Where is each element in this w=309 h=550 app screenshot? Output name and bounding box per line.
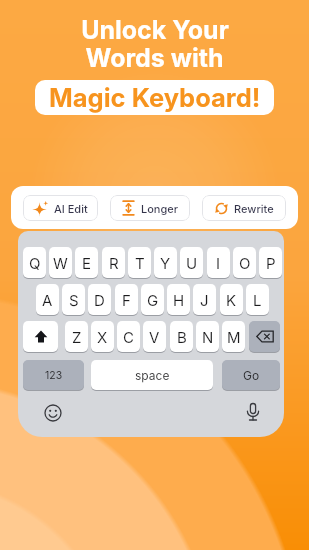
button[interactable]: T <box>128 247 151 278</box>
button[interactable]: Go <box>222 360 280 390</box>
staticText: E <box>82 254 92 272</box>
staticText: F <box>122 291 131 309</box>
staticText: AI Edit <box>54 202 88 215</box>
staticText: 123 <box>45 369 63 382</box>
button[interactable]: U <box>180 247 203 278</box>
staticText: Z <box>72 328 82 346</box>
staticText: U <box>186 254 198 272</box>
button[interactable]: V <box>143 321 166 352</box>
staticText: Q <box>29 254 41 272</box>
button[interactable] <box>23 321 58 352</box>
button[interactable]: I <box>207 247 230 278</box>
button[interactable]: R <box>102 247 125 278</box>
button[interactable] <box>42 402 64 424</box>
staticText: space <box>135 368 170 383</box>
button[interactable]: S <box>62 284 85 315</box>
button[interactable]: 123 <box>23 360 84 390</box>
staticText: A <box>42 291 53 309</box>
button[interactable]: D <box>88 284 111 315</box>
staticText: Go <box>243 368 260 383</box>
button[interactable] <box>242 401 264 423</box>
button[interactable]: E <box>75 247 98 278</box>
staticText: Unlock Your <box>81 15 229 45</box>
button[interactable]: C <box>117 321 140 352</box>
button[interactable]: G <box>141 284 164 315</box>
staticText: S <box>69 291 79 309</box>
button[interactable]: AI Edit <box>23 195 98 221</box>
staticText: M <box>227 328 241 346</box>
staticText: Rewrite <box>234 202 274 215</box>
button[interactable]: Longer <box>110 195 190 221</box>
staticText: O <box>239 254 251 272</box>
staticText: Y <box>160 254 171 272</box>
button[interactable] <box>249 321 280 352</box>
staticText: D <box>94 291 105 309</box>
button[interactable]: space <box>91 360 213 390</box>
button[interactable]: Z <box>65 321 88 352</box>
staticText: B <box>177 328 187 346</box>
staticText: J <box>200 291 209 309</box>
staticText: C <box>123 328 134 346</box>
staticText: W <box>53 254 68 272</box>
button[interactable]: F <box>115 284 138 315</box>
button[interactable]: Y <box>154 247 177 278</box>
button[interactable]: P <box>259 247 282 278</box>
button[interactable]: O <box>233 247 256 278</box>
staticText: N <box>202 328 214 346</box>
button[interactable]: B <box>170 321 193 352</box>
staticText: V <box>149 328 160 346</box>
button[interactable]: W <box>49 247 72 278</box>
staticText: G <box>147 291 159 309</box>
staticText: L <box>253 291 262 309</box>
button[interactable]: X <box>91 321 114 352</box>
staticText: T <box>135 254 145 272</box>
staticText: K <box>226 291 237 309</box>
button[interactable]: M <box>222 321 245 352</box>
staticText: Longer <box>141 202 179 215</box>
staticText: P <box>266 254 276 272</box>
staticText: Words with <box>85 43 224 73</box>
button[interactable]: K <box>220 284 243 315</box>
button[interactable]: H <box>167 284 190 315</box>
button[interactable]: Q <box>23 247 46 278</box>
button[interactable]: A <box>36 284 59 315</box>
button[interactable]: N <box>196 321 219 352</box>
button[interactable]: L <box>246 284 269 315</box>
button[interactable]: Rewrite <box>202 195 286 221</box>
staticText: R <box>109 254 119 272</box>
staticText: H <box>173 291 185 309</box>
staticText: Magic Keyboard! <box>49 82 261 113</box>
button[interactable]: J <box>193 284 216 315</box>
staticText: X <box>97 328 108 346</box>
staticText: I <box>216 254 221 272</box>
